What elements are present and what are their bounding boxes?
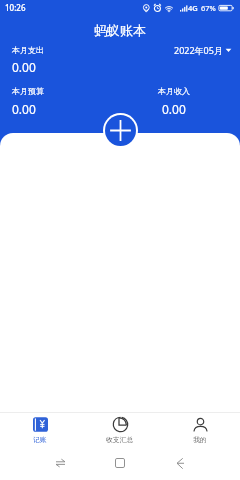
staticText: 0.00: [12, 59, 36, 75]
staticText: 0.00: [12, 101, 36, 117]
staticText: 2022年05月: [174, 44, 223, 56]
staticText: 收支汇总: [106, 435, 134, 444]
button[interactable]: Back: [150, 446, 210, 480]
staticText: 记账: [33, 435, 47, 444]
button[interactable]: 记账: [0, 415, 80, 446]
button[interactable]: 我的: [160, 415, 240, 446]
staticText: 0.00: [162, 101, 186, 117]
button[interactable]: Add record: [105, 115, 136, 146]
staticText: 67%: [201, 3, 216, 13]
staticText: 我的: [193, 435, 207, 444]
button[interactable]: 2022年05月: [173, 43, 233, 57]
staticText: 10:26: [5, 2, 26, 13]
button[interactable]: 收支汇总: [80, 415, 160, 446]
staticText: 本月收入: [158, 86, 190, 96]
staticText: 4G: [188, 3, 198, 13]
button[interactable]: Recents: [30, 446, 90, 480]
staticText: 本月支出: [12, 45, 44, 55]
staticText: 本月预算: [12, 86, 44, 96]
button[interactable]: Home: [90, 446, 150, 480]
staticText: 蚂蚁账本: [94, 22, 146, 38]
